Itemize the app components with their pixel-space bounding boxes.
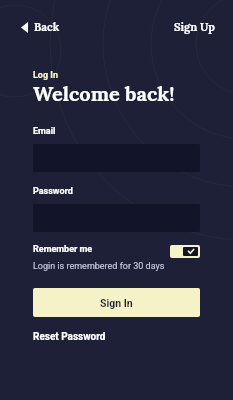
staticText: Log In [33, 70, 59, 81]
staticText: Reset Password [33, 331, 106, 343]
staticText: Login is remembered for 30 days [33, 261, 165, 272]
button[interactable]: Sign Up [167, 14, 222, 40]
staticText: Welcome back! [33, 81, 175, 107]
staticText: Remember me [33, 244, 93, 255]
staticText: Sign Up [174, 20, 215, 34]
staticText: Sign In [100, 297, 133, 309]
button[interactable]: Back [14, 14, 67, 40]
staticText: Email [33, 126, 56, 137]
button[interactable]: Sign In [33, 288, 200, 317]
button[interactable]: Remember me, on [170, 245, 200, 258]
staticText: Back [34, 20, 60, 34]
button[interactable]: Reset Password [33, 331, 106, 343]
staticText: Password [33, 186, 73, 197]
